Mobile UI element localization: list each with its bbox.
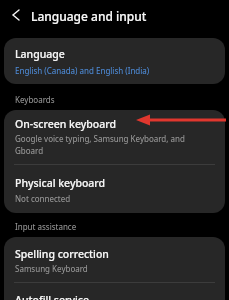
staticText: English (Canada) and English (India): [15, 65, 150, 76]
staticText: On-screen keyboard: [15, 117, 116, 131]
staticText: Keyboards: [15, 94, 55, 105]
staticText: Language: [15, 47, 65, 61]
staticText: Spelling correction: [15, 247, 109, 261]
staticText: Language and input: [31, 8, 147, 24]
staticText: Physical keyboard: [15, 176, 106, 190]
staticText: Not connected: [15, 193, 71, 204]
button[interactable]: Language: [4, 38, 225, 84]
button[interactable]: On-screen keyboard: [4, 110, 225, 164]
staticText: Samsung Keyboard: [15, 263, 88, 274]
button[interactable]: [6, 5, 26, 25]
button[interactable]: Spelling correction: [4, 237, 225, 282]
staticText: Gboard: [15, 145, 44, 156]
staticText: Input assistance: [15, 221, 77, 232]
staticText: Google voice typing, Samsung Keyboard, a…: [15, 133, 185, 144]
staticText: Autofill service: [15, 293, 89, 300]
button[interactable]: Autofill service: [4, 283, 225, 300]
button[interactable]: Physical keyboard: [4, 165, 225, 213]
